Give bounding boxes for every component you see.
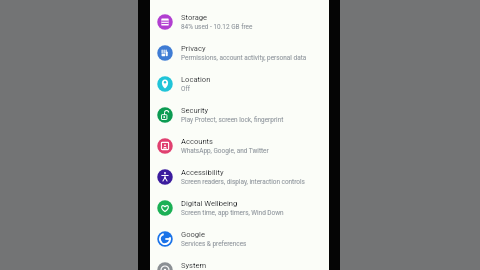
button[interactable]: Security: [150, 99, 329, 130]
button[interactable]: Location: [150, 68, 329, 99]
staticText: Storage: [181, 13, 208, 22]
staticText: Location: [181, 75, 211, 84]
other: Privacy: [157, 45, 173, 61]
staticText: Permissions, account activity, personal …: [181, 54, 307, 62]
staticText: Off: [181, 85, 190, 93]
button[interactable]: Storage: [150, 6, 329, 37]
other: Security: [157, 107, 173, 123]
staticText: Services & preferences: [181, 240, 247, 248]
button[interactable]: Accessibility: [150, 161, 329, 192]
button[interactable]: System: [150, 254, 329, 270]
staticText: System: [181, 261, 207, 270]
staticText: Screen time, app timers, Wind Down: [181, 209, 284, 217]
other: Accounts: [157, 138, 173, 154]
other: Location: [157, 76, 173, 92]
staticText: Security: [181, 106, 209, 115]
staticText: 84% used - 10.12 GB free: [181, 23, 253, 31]
staticText: Accounts: [181, 137, 214, 146]
other: System: [157, 262, 173, 270]
staticText: Digital Wellbeing: [181, 199, 238, 208]
staticText: Screen readers, display, interaction con…: [181, 178, 305, 186]
other: Google: [157, 231, 173, 247]
button[interactable]: Privacy: [150, 37, 329, 68]
other: Storage: [157, 14, 173, 30]
staticText: Accessibility: [181, 168, 224, 177]
staticText: Privacy: [181, 44, 206, 53]
button[interactable]: Digital Wellbeing: [150, 192, 329, 223]
staticText: Google: [181, 230, 205, 239]
staticText: Play Protect, screen lock, fingerprint: [181, 116, 284, 124]
button[interactable]: Google: [150, 223, 329, 254]
other: Digital Wellbeing: [157, 200, 173, 216]
button[interactable]: Accounts: [150, 130, 329, 161]
staticText: WhatsApp, Google, and Twitter: [181, 147, 269, 155]
other: Accessibility: [157, 169, 173, 185]
